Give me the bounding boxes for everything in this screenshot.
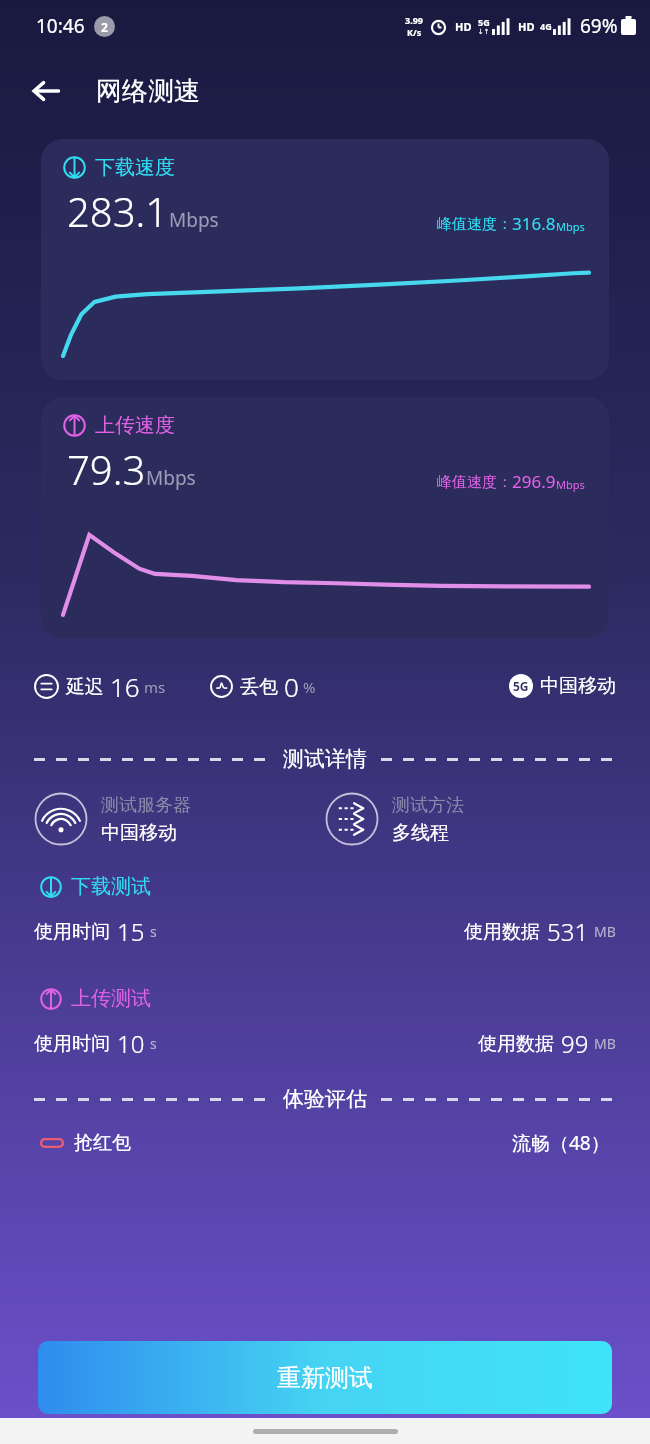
staticText: 上传速度 <box>95 413 175 438</box>
staticText: K/s <box>407 26 422 38</box>
staticText: HD <box>518 19 535 34</box>
button[interactable]: 上传速度 <box>41 397 609 638</box>
staticText: 283.1 <box>67 184 169 238</box>
staticText: s <box>150 1034 157 1053</box>
staticText: 10:46 <box>36 13 85 39</box>
staticText: 5G <box>478 16 490 28</box>
staticText: 网络测速 <box>96 75 200 108</box>
staticText: 重新测试 <box>277 1363 373 1393</box>
staticText: ↓↑ <box>478 28 490 36</box>
staticText: 2 <box>101 19 108 35</box>
staticText: s <box>150 922 157 941</box>
staticText: % <box>303 677 316 697</box>
staticText: 79.3 <box>67 442 146 496</box>
staticText: ms <box>144 677 166 697</box>
staticText: 4G <box>540 20 552 32</box>
staticText: 延迟 <box>66 675 104 699</box>
staticText: 316.8 <box>512 212 556 235</box>
staticText: 3.99 <box>405 14 423 26</box>
staticText: 使用时间 <box>34 920 110 944</box>
button[interactable]: 上传测试 <box>40 986 610 1011</box>
staticText: 下载测试 <box>71 874 151 899</box>
staticText: 体验评估 <box>283 1086 367 1112</box>
staticText: 丢包 <box>240 675 278 699</box>
staticText: 5G <box>513 678 529 694</box>
staticText: 下载速度 <box>95 155 175 180</box>
button[interactable]: 5G <box>509 674 616 698</box>
staticText: 上传测试 <box>71 986 151 1011</box>
staticText: 69% <box>580 13 618 39</box>
staticText: 测试服务器 <box>101 794 191 817</box>
button[interactable]: 下载测试 <box>40 874 610 899</box>
staticText: 16 <box>110 669 140 704</box>
staticText: 10 <box>117 1027 145 1060</box>
staticText: 流畅（48） <box>512 1130 610 1156</box>
button[interactable]: 重新测试 <box>38 1341 612 1414</box>
staticText: Mbps <box>169 207 219 233</box>
staticText: 多线程 <box>392 821 449 845</box>
button[interactable]: Back <box>18 63 74 119</box>
staticText: 测试详情 <box>283 746 367 772</box>
button[interactable]: 丢包 <box>210 669 316 704</box>
staticText: Mbps <box>146 465 196 491</box>
staticText: 峰值速度： <box>437 473 512 492</box>
button[interactable]: 延迟 <box>34 669 166 704</box>
staticText: 使用数据 <box>478 1032 554 1056</box>
staticText: 峰值速度： <box>437 215 512 234</box>
staticText: Mbps <box>556 219 585 234</box>
staticText: 531 <box>547 915 589 948</box>
staticText: MB <box>594 1034 616 1053</box>
staticText: HD <box>455 19 472 34</box>
staticText: 测试方法 <box>392 794 464 817</box>
staticText: 0 <box>284 669 299 704</box>
staticText: 中国移动 <box>101 821 177 845</box>
staticText: Mbps <box>556 477 585 492</box>
staticText: 抢红包 <box>74 1131 131 1155</box>
button[interactable]: 测试方法 <box>325 792 616 846</box>
staticText: 中国移动 <box>540 674 616 698</box>
staticText: 使用时间 <box>34 1032 110 1056</box>
button[interactable]: 测试服务器 <box>34 792 325 846</box>
button[interactable]: 下载速度 <box>41 139 609 380</box>
staticText: 296.9 <box>512 470 556 493</box>
staticText: 99 <box>561 1027 589 1060</box>
staticText: 15 <box>117 915 145 948</box>
staticText: 使用数据 <box>464 920 540 944</box>
staticText: MB <box>594 922 616 941</box>
